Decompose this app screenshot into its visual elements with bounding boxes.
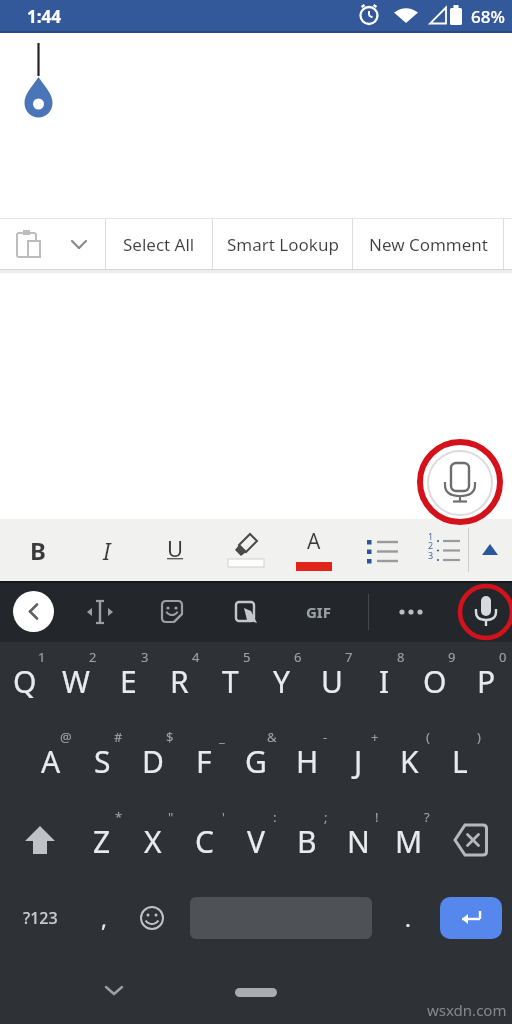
- button[interactable]: J: [333, 727, 383, 791]
- staticText: 6: [294, 648, 302, 666]
- staticText: @: [60, 728, 72, 746]
- button[interactable]: D: [128, 727, 178, 791]
- button[interactable]: [416, 519, 468, 581]
- button[interactable]: W: [51, 647, 101, 711]
- button[interactable]: K: [384, 727, 434, 791]
- button[interactable]: ,: [80, 892, 128, 944]
- staticText: 7: [345, 648, 353, 666]
- button[interactable]: B: [282, 807, 332, 871]
- staticText: !: [375, 808, 379, 826]
- button[interactable]: N: [333, 807, 383, 871]
- button[interactable]: U: [307, 647, 357, 711]
- button[interactable]: [0, 219, 53, 269]
- button[interactable]: [354, 519, 410, 581]
- button[interactable]: L: [435, 727, 485, 791]
- button[interactable]: I: [359, 647, 409, 711]
- button[interactable]: O: [410, 647, 460, 711]
- button[interactable]: U: [147, 522, 203, 574]
- staticText: Select All: [123, 233, 195, 256]
- staticText: U: [167, 533, 184, 563]
- staticText: J: [354, 741, 363, 782]
- button[interactable]: G: [231, 727, 281, 791]
- staticText: 0: [499, 648, 507, 666]
- button[interactable]: New Comment: [353, 219, 503, 269]
- button[interactable]: B: [10, 524, 66, 576]
- staticText: C: [195, 821, 214, 862]
- button[interactable]: C: [179, 807, 229, 871]
- staticText: ?123: [23, 907, 58, 929]
- button[interactable]: [235, 988, 277, 997]
- button[interactable]: V: [231, 807, 281, 871]
- staticText: Q: [13, 661, 37, 702]
- staticText: ): [477, 728, 481, 746]
- button[interactable]: A: [26, 727, 76, 791]
- button[interactable]: [53, 219, 105, 269]
- staticText: _: [219, 728, 225, 746]
- button[interactable]: Select All: [106, 219, 212, 269]
- button[interactable]: [148, 588, 196, 636]
- button[interactable]: H: [282, 727, 332, 791]
- staticText: Smart Lookup: [227, 233, 339, 256]
- button[interactable]: [13, 591, 54, 632]
- button[interactable]: ?123: [8, 892, 72, 944]
- staticText: W: [62, 661, 90, 702]
- button[interactable]: I: [79, 524, 135, 576]
- button[interactable]: M: [384, 807, 434, 871]
- staticText: :: [273, 808, 277, 826]
- staticText: M: [395, 821, 423, 862]
- staticText: ": [168, 808, 174, 826]
- staticText: Z: [93, 821, 111, 862]
- staticText: GIF: [306, 602, 331, 622]
- button[interactable]: S: [77, 727, 127, 791]
- staticText: U: [321, 661, 343, 702]
- button[interactable]: [128, 892, 176, 944]
- staticText: ;: [324, 808, 328, 826]
- staticText: 2: [428, 539, 434, 550]
- button[interactable]: [217, 519, 273, 581]
- staticText: L: [452, 741, 468, 782]
- staticText: F: [196, 741, 212, 782]
- staticText: V: [247, 821, 265, 862]
- button[interactable]: [469, 519, 512, 581]
- button[interactable]: F: [179, 727, 229, 791]
- button[interactable]: [462, 588, 510, 636]
- staticText: 5: [243, 648, 251, 666]
- button[interactable]: [444, 812, 502, 864]
- staticText: .: [405, 903, 411, 933]
- staticText: H: [296, 741, 319, 782]
- button[interactable]: A: [286, 519, 342, 563]
- staticText: wsxdn.com: [427, 1000, 507, 1020]
- button[interactable]: [440, 897, 502, 939]
- button[interactable]: GIF: [294, 588, 342, 636]
- button[interactable]: Y: [256, 647, 306, 711]
- staticText: -: [323, 728, 328, 746]
- button[interactable]: Q: [0, 647, 50, 711]
- staticText: I: [103, 535, 111, 566]
- button[interactable]: [221, 588, 269, 636]
- button[interactable]: Z: [77, 807, 127, 871]
- staticText: 1:44: [27, 5, 61, 28]
- staticText: #: [114, 728, 123, 746]
- button[interactable]: P: [461, 647, 511, 711]
- staticText: 1: [38, 648, 46, 666]
- staticText: 3: [141, 648, 149, 666]
- button[interactable]: [427, 449, 493, 515]
- staticText: A: [41, 741, 61, 782]
- button[interactable]: [10, 812, 66, 864]
- staticText: G: [245, 741, 267, 782]
- staticText: Y: [273, 661, 290, 702]
- button[interactable]: R: [154, 647, 204, 711]
- staticText: P: [477, 661, 496, 702]
- button[interactable]: [387, 588, 435, 636]
- staticText: 68%: [471, 5, 505, 28]
- button[interactable]: X: [128, 807, 178, 871]
- button[interactable]: E: [103, 647, 153, 711]
- staticText: I: [379, 661, 390, 702]
- staticText: 9: [448, 648, 456, 666]
- button[interactable]: .: [384, 892, 432, 944]
- button[interactable]: T: [205, 647, 255, 711]
- button[interactable]: [76, 588, 124, 636]
- staticText: +: [371, 728, 379, 746]
- button[interactable]: Smart Lookup: [213, 219, 352, 269]
